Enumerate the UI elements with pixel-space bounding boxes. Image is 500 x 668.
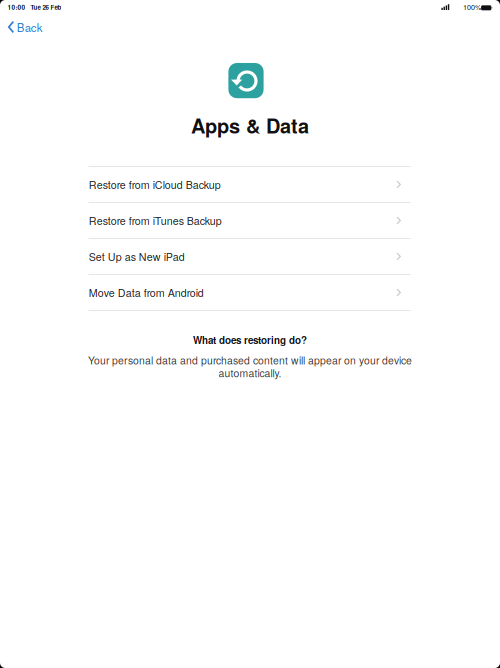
- staticText: Restore from iCloud Backup: [89, 177, 221, 192]
- button[interactable]: Restore from iTunes Backup: [88, 202, 411, 238]
- button[interactable]: Restore from iCloud Backup: [88, 166, 411, 202]
- staticText: What does restoring do?: [193, 333, 307, 347]
- staticText: Back: [17, 19, 43, 35]
- button[interactable]: Back: [2, 15, 49, 39]
- staticText: Restore from iTunes Backup: [89, 213, 222, 228]
- staticText: Move Data from Android: [89, 285, 204, 300]
- staticText: 100%: [463, 2, 481, 12]
- staticText: Apps & Data: [191, 111, 309, 140]
- staticText: 10:00: [7, 3, 25, 12]
- button[interactable]: Set Up as New iPad: [88, 238, 411, 274]
- staticText: Tue 26 Feb: [30, 3, 61, 12]
- staticText: Set Up as New iPad: [89, 249, 185, 264]
- staticText: Your personal data and purchased content…: [88, 352, 412, 367]
- staticText: automatically.: [218, 365, 281, 380]
- button[interactable]: Move Data from Android: [88, 274, 411, 310]
